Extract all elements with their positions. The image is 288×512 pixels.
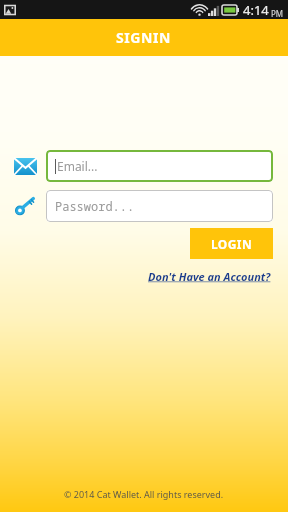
button[interactable]: Password [13, 194, 37, 218]
staticText: Password... [55, 198, 135, 214]
staticText: LOGIN [211, 236, 253, 252]
staticText: SIGNIN [116, 28, 172, 47]
button[interactable]: Don't Have an Account? [146, 267, 273, 286]
button[interactable]: LOGIN [190, 228, 273, 259]
button[interactable]: Email [13, 154, 37, 178]
staticText: 4:14 [243, 1, 269, 19]
button[interactable]: Email... [46, 150, 273, 182]
button[interactable]: Password... [46, 190, 273, 222]
staticText: PM [271, 8, 284, 19]
staticText: Don't Have an Account? [148, 269, 271, 284]
staticText: © 2014 Cat Wallet. All rights reserved. [64, 488, 224, 500]
staticText: Email... [57, 158, 98, 174]
